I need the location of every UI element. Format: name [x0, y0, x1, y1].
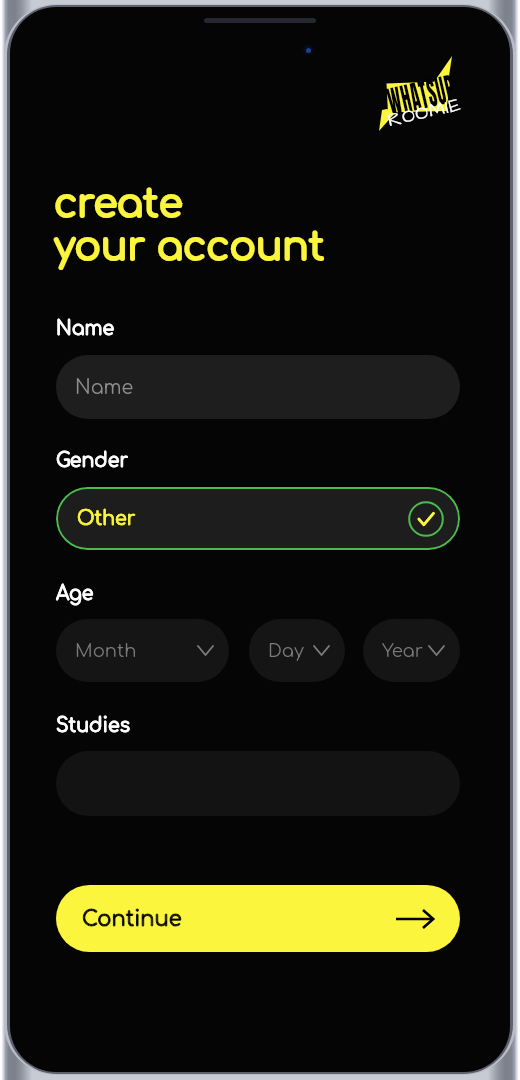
staticText: your account — [54, 226, 325, 269]
staticText: Continue — [82, 907, 182, 930]
other: Whatsup Roomie logo — [372, 52, 502, 138]
staticText: ROOMIE — [385, 91, 464, 133]
staticText: Year — [382, 641, 423, 661]
button[interactable]: Day — [249, 619, 345, 682]
staticText: Name — [56, 318, 115, 339]
button[interactable]: Name — [56, 355, 460, 419]
button[interactable]: Continue — [56, 885, 460, 952]
staticText: Continue — [82, 907, 182, 930]
staticText: your account — [54, 226, 325, 269]
button[interactable]: Other — [56, 487, 460, 550]
staticText: Name — [56, 318, 115, 339]
staticText: Name — [75, 377, 134, 398]
button[interactable]: Month — [56, 619, 229, 682]
staticText: Age — [56, 583, 94, 604]
staticText: Other — [77, 508, 136, 529]
staticText: Other — [77, 508, 136, 529]
staticText: Studies — [56, 715, 130, 736]
staticText: Studies — [56, 715, 130, 736]
staticText: create — [54, 183, 183, 226]
staticText: Month — [75, 641, 137, 661]
staticText: WHATSUP — [383, 64, 460, 126]
staticText: Gender — [56, 450, 129, 471]
button[interactable]: Year — [363, 619, 460, 682]
staticText: Age — [56, 583, 94, 604]
staticText: Day — [268, 641, 304, 661]
staticText: Gender — [56, 450, 129, 471]
staticText: create — [54, 183, 183, 226]
